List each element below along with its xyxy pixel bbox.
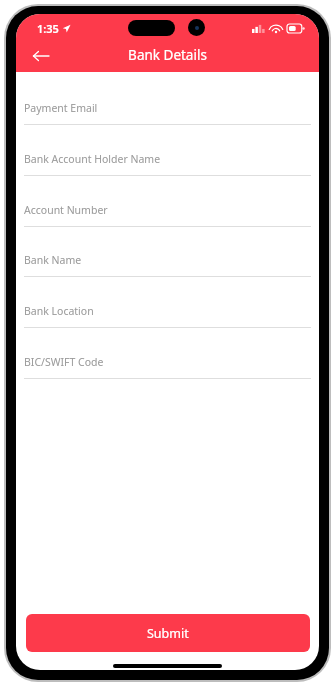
button[interactable]: Back xyxy=(26,41,56,71)
staticText: Account Number xyxy=(24,203,108,217)
staticText: BIC/SWIFT Code xyxy=(24,355,104,369)
staticText: Bank Location xyxy=(24,304,94,318)
button[interactable]: Bank Location xyxy=(24,304,311,328)
button[interactable]: Payment Email xyxy=(24,101,311,125)
button[interactable]: Submit xyxy=(26,614,310,652)
button[interactable]: Bank Account Holder Name xyxy=(24,152,311,176)
staticText: Bank Account Holder Name xyxy=(24,152,161,166)
staticText: 1:35 xyxy=(37,21,59,36)
button[interactable]: BIC/SWIFT Code xyxy=(24,355,311,379)
staticText: Payment Email xyxy=(24,101,98,115)
staticText: Bank Name xyxy=(24,253,82,267)
button[interactable]: Account Number xyxy=(24,203,311,227)
button[interactable]: Bank Name xyxy=(24,253,311,277)
staticText: Bank Details xyxy=(128,46,207,64)
staticText: Submit xyxy=(147,625,189,642)
